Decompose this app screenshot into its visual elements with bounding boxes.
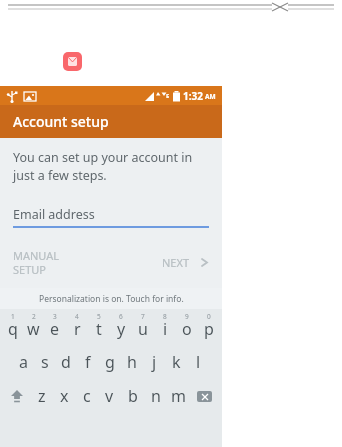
button[interactable]: 8: [154, 309, 176, 345]
staticText: u: [138, 318, 148, 340]
staticText: a: [19, 351, 28, 373]
staticText: y: [117, 318, 126, 340]
staticText: 5: [97, 312, 101, 321]
staticText: You can set up your account in just a fe…: [13, 149, 193, 184]
staticText: j: [152, 351, 157, 373]
staticText: 3: [53, 312, 57, 321]
button[interactable]: a: [13, 345, 34, 379]
staticText: E: [166, 92, 170, 100]
staticText: p: [204, 318, 214, 340]
staticText: NEXT: [162, 255, 190, 270]
button[interactable]: v: [98, 379, 121, 413]
button[interactable]: l: [187, 345, 209, 379]
staticText: v: [105, 385, 114, 407]
button[interactable]: s: [34, 345, 55, 379]
button[interactable]: c: [75, 379, 98, 413]
button[interactable]: b: [121, 379, 144, 413]
staticText: q: [8, 318, 18, 340]
staticText: r: [74, 318, 81, 340]
staticText: t: [96, 318, 102, 340]
staticText: h: [127, 351, 137, 373]
staticText: Account setup: [13, 112, 109, 131]
button[interactable]: j: [143, 345, 165, 379]
button[interactable]: n: [144, 379, 167, 413]
button[interactable]: 9: [176, 309, 198, 345]
button[interactable]: Email app icon: [63, 52, 82, 71]
staticText: f: [85, 351, 91, 373]
staticText: 9: [185, 312, 189, 321]
staticText: b: [128, 385, 138, 407]
button[interactable]: 1: [2, 309, 23, 345]
button[interactable]: Backspace: [190, 379, 219, 413]
staticText: 4: [75, 312, 79, 321]
staticText: e: [50, 318, 60, 340]
button[interactable]: x: [53, 379, 75, 413]
staticText: m: [171, 385, 186, 407]
button[interactable]: d: [55, 345, 77, 379]
button[interactable]: 6: [110, 309, 132, 345]
staticText: s: [41, 351, 49, 373]
button[interactable]: 5: [88, 309, 110, 345]
button[interactable]: z: [31, 379, 53, 413]
staticText: Personalization is on. Touch for info.: [39, 293, 184, 305]
button[interactable]: Account setup: [0, 105, 222, 138]
button[interactable]: 0: [198, 309, 220, 345]
button[interactable]: m: [167, 379, 190, 413]
staticText: z: [38, 385, 46, 407]
button[interactable]: Email address: [13, 206, 209, 228]
button[interactable]: Shift: [3, 379, 31, 413]
staticText: 1:32: [183, 89, 203, 103]
staticText: g: [105, 351, 115, 373]
button[interactable]: f: [77, 345, 99, 379]
button[interactable]: 4: [66, 309, 88, 345]
staticText: 6: [119, 312, 123, 321]
staticText: 1: [11, 312, 15, 321]
staticText: i: [163, 318, 168, 340]
button[interactable]: 2: [23, 309, 44, 345]
button[interactable]: 7: [132, 309, 154, 345]
staticText: 2: [32, 312, 36, 321]
button[interactable]: Personalization is on. Touch for info.: [0, 288, 222, 309]
staticText: c: [83, 385, 91, 407]
staticText: w: [27, 318, 40, 340]
staticText: 0: [207, 312, 211, 321]
button[interactable]: NEXT: [162, 255, 209, 270]
button[interactable]: h: [121, 345, 143, 379]
staticText: 8: [163, 312, 167, 321]
staticText: d: [61, 351, 71, 373]
staticText: Email address: [13, 206, 95, 223]
staticText: x: [60, 385, 69, 407]
button[interactable]: g: [99, 345, 121, 379]
staticText: MANUAL SETUP: [13, 248, 60, 277]
staticText: AM: [205, 92, 216, 101]
button[interactable]: MANUAL SETUP: [13, 248, 60, 277]
button[interactable]: 3: [44, 309, 66, 345]
staticText: k: [172, 351, 181, 373]
button[interactable]: k: [165, 345, 187, 379]
staticText: n: [151, 385, 161, 407]
staticText: o: [182, 318, 192, 340]
staticText: l: [196, 351, 201, 373]
staticText: 7: [141, 312, 145, 321]
